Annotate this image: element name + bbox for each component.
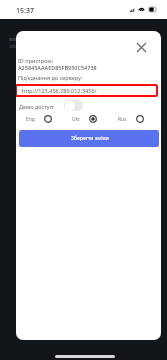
- staticText: Eng: [26, 116, 35, 123]
- staticText: Демо доступ:: [19, 103, 55, 110]
- button[interactable]: http://123.456.789.012:3456/: [16, 84, 158, 97]
- staticText: A25845AAAED85FB950C54738: [18, 64, 97, 71]
- button[interactable]: Ukr: [70, 111, 99, 127]
- button[interactable]: Eng: [24, 111, 55, 127]
- staticText: Ukr: [72, 116, 81, 123]
- staticText: Зберегти зміни: [71, 135, 109, 142]
- staticText: http://123.456.789.012:3456/: [22, 87, 97, 94]
- staticText: 15:37: [16, 6, 34, 16]
- button[interactable]: Rus: [116, 111, 145, 127]
- button[interactable]: Close: [131, 37, 151, 57]
- staticText: ID пристрою:: [18, 57, 54, 64]
- staticText: Підʼєднання до серверу:: [18, 74, 83, 81]
- button[interactable]: Зберегти зміни: [19, 130, 159, 147]
- staticText: Rus: [118, 116, 127, 123]
- button[interactable]: Demo access: [64, 100, 83, 111]
